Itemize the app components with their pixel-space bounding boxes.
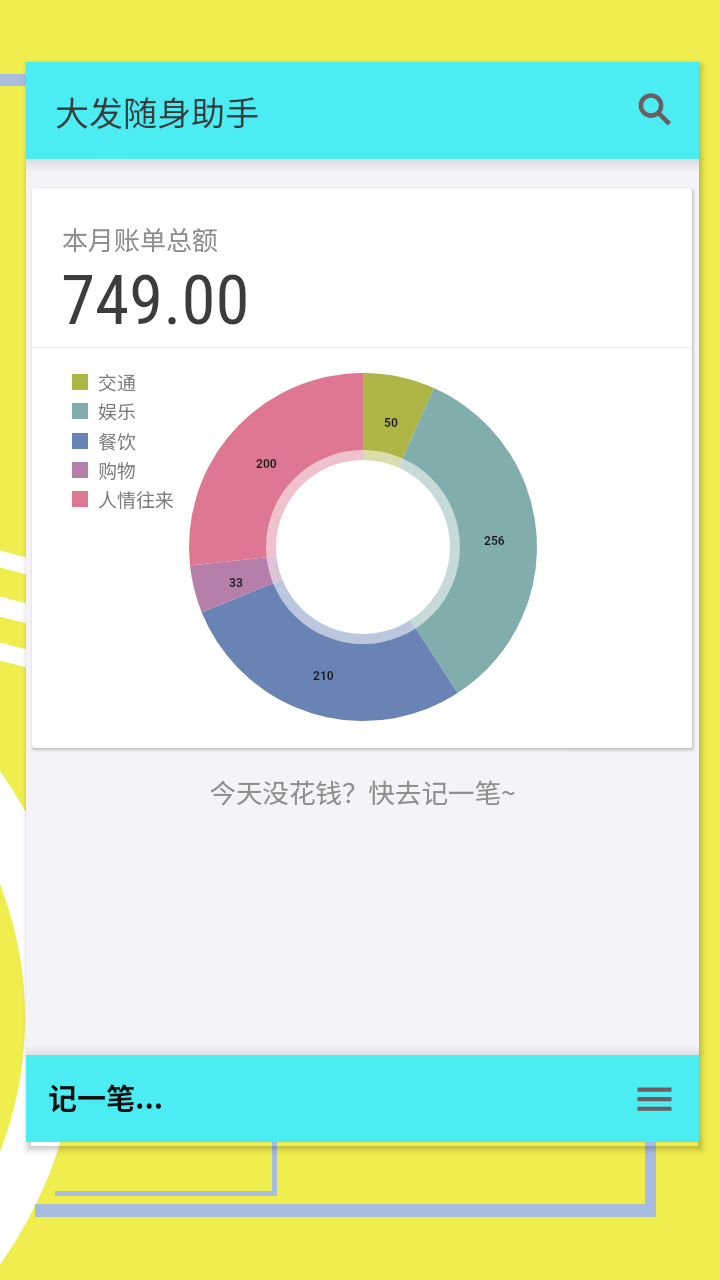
staticText: 购物 [98,456,137,484]
button[interactable]: 大发随身助手 [26,62,699,159]
staticText: 交通 [98,368,137,396]
staticText: 娱乐 [98,397,137,425]
button[interactable]: 记一笔... [26,1055,699,1142]
staticText: 人情往来 [98,485,175,513]
button[interactable]: 购物 [72,456,137,484]
staticText: 大发随身助手 [55,87,259,136]
button[interactable]: Menu [631,1071,687,1127]
button[interactable]: 交通 [72,368,137,396]
button[interactable]: 人情往来 [72,485,175,513]
staticText: 200 [256,457,277,471]
staticText: 33 [229,576,243,590]
staticText: 本月账单总额 [62,220,219,258]
button[interactable]: 餐饮 [72,427,137,455]
staticText: 50 [384,416,398,430]
staticText: 餐饮 [98,427,137,455]
staticText: 256 [484,534,505,548]
staticText: 今天没花钱？快去记一笔~ [26,772,699,810]
staticText: 749.00 [61,260,250,341]
staticText: 记一笔... [48,1075,164,1117]
button[interactable]: Search [620,79,684,143]
staticText: 210 [313,669,334,683]
button[interactable]: 娱乐 [72,397,137,425]
